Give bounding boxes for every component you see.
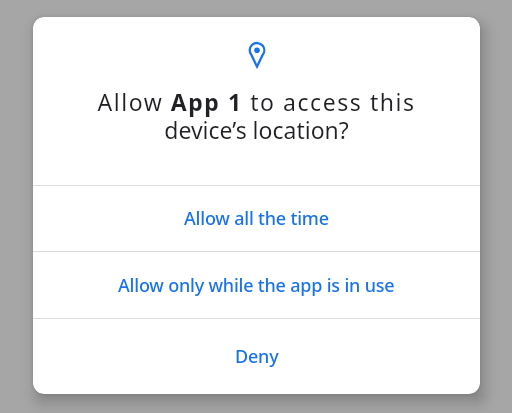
staticText: Allow only while the app is in use [118, 273, 395, 298]
button[interactable]: Allow all the time [33, 186, 480, 251]
staticText: Allow all the time [184, 206, 329, 231]
button[interactable]: Deny [33, 319, 480, 394]
button[interactable]: Allow only while the app is in use [33, 252, 480, 318]
staticText: Deny [235, 344, 279, 369]
staticText: Allow App 1 to access this device’s loca… [97, 86, 416, 146]
